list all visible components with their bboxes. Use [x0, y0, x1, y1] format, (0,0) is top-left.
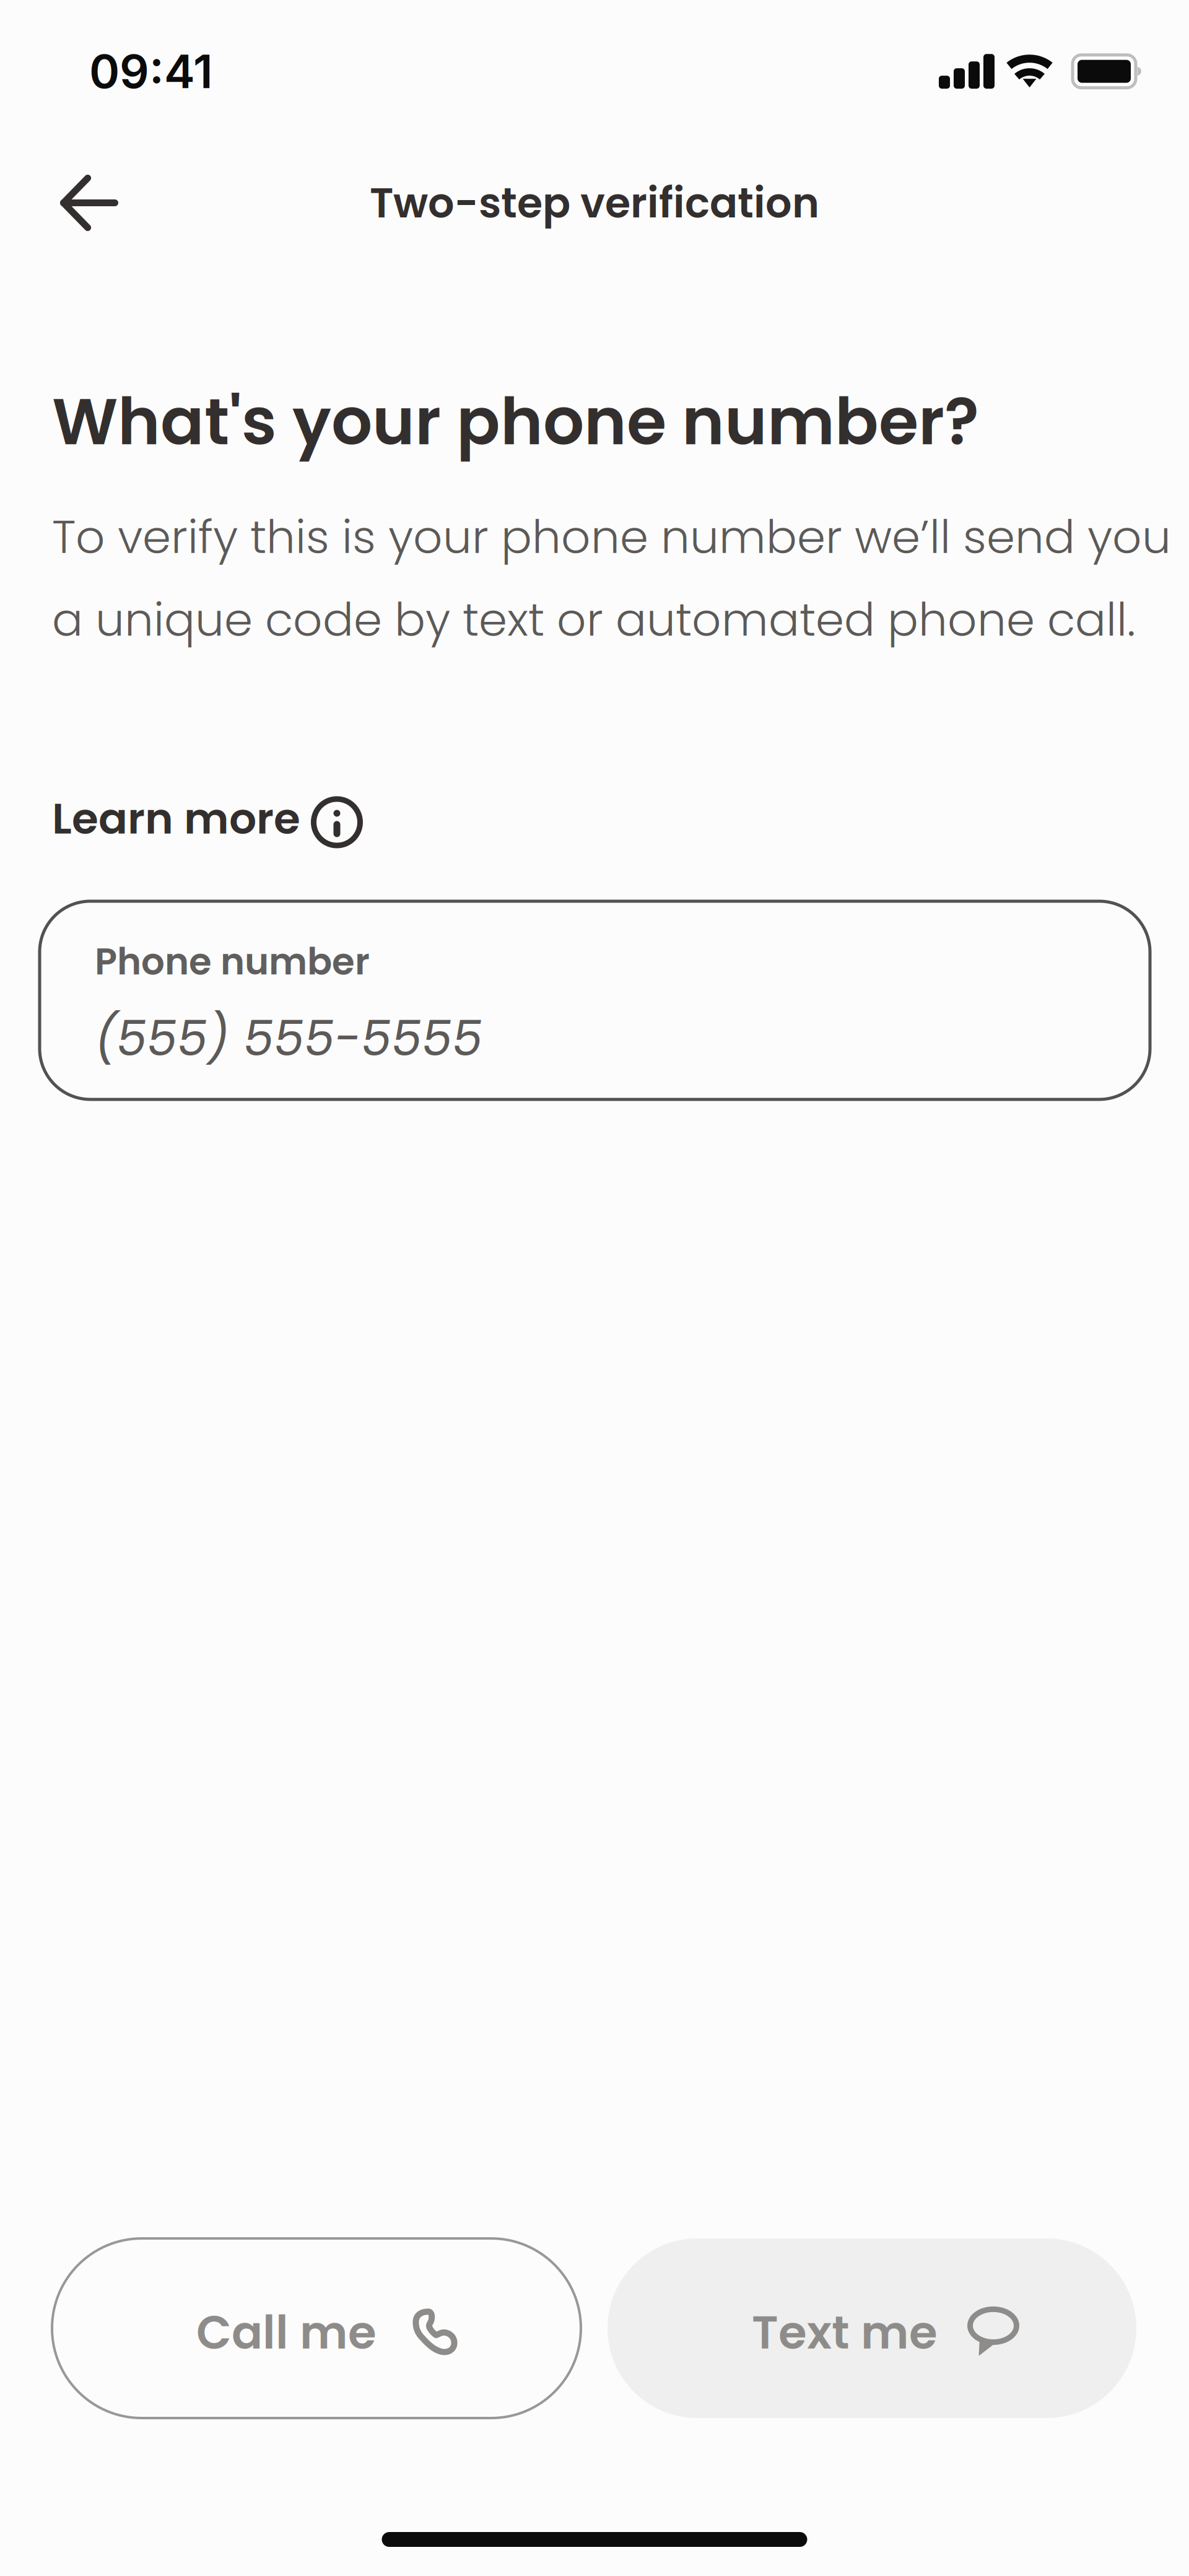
staticText: Text me [752, 2300, 938, 2365]
button[interactable]: Back [59, 174, 118, 232]
staticText: To verify this is your phone number we’l… [52, 505, 1171, 652]
staticText: Learn more [52, 788, 300, 849]
button[interactable]: Call me [52, 2238, 581, 2418]
staticText: 09:41 [89, 43, 213, 99]
button[interactable]: Learn more [52, 788, 363, 849]
button[interactable]: Text me [608, 2238, 1136, 2418]
staticText: What's your phone number? [52, 377, 979, 467]
staticText: Phone number [95, 936, 370, 987]
staticText: (555) 555-5555 [95, 1005, 482, 1072]
staticText: Two-step verification [370, 174, 819, 232]
staticText: Call me [196, 2300, 377, 2365]
